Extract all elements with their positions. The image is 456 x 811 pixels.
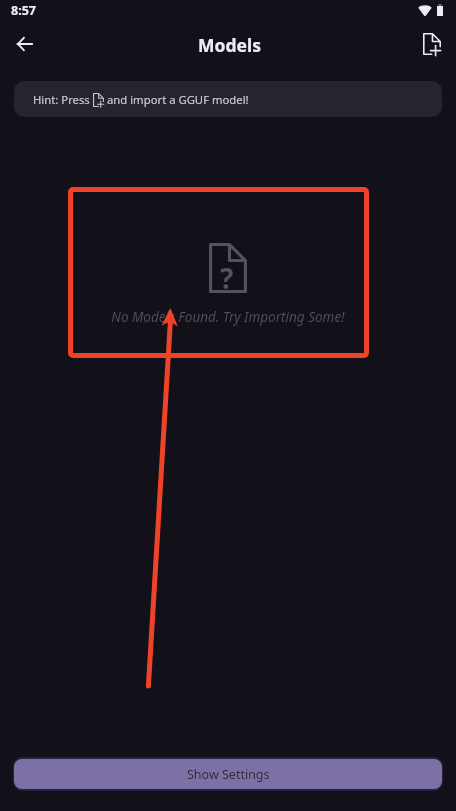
button[interactable]: Import model xyxy=(412,24,452,64)
button[interactable]: Back xyxy=(4,24,44,64)
staticText: Hint: Press xyxy=(33,92,90,107)
button[interactable]: Hint: Press xyxy=(14,81,442,117)
staticText: and import a GGUF model! xyxy=(107,92,249,107)
staticText: Models xyxy=(198,33,261,57)
staticText: No Models Found. Try Importing Some! xyxy=(111,308,345,326)
staticText: Show Settings xyxy=(187,766,270,783)
staticText: 8:57 xyxy=(11,2,36,19)
staticText: ? xyxy=(220,259,234,297)
button[interactable]: Show Settings xyxy=(14,759,442,789)
